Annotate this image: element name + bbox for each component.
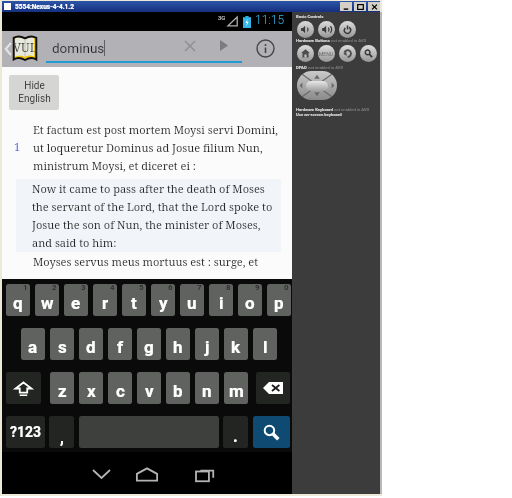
staticText: o (245, 293, 255, 313)
button[interactable]: c (108, 372, 132, 404)
staticText: not enabled in AVD (331, 38, 367, 43)
button[interactable]: Close (368, 2, 380, 11)
button[interactable]: Search (253, 416, 290, 448)
other: Up (5, 43, 12, 55)
staticText: d (86, 337, 96, 357)
staticText: f (117, 337, 124, 357)
staticText: x (87, 381, 96, 401)
button[interactable]: m (224, 372, 248, 404)
staticText: k (231, 337, 241, 357)
button[interactable]: w (35, 284, 59, 316)
staticText: 5554:Nexus-4-4.1.2 (15, 3, 74, 11)
button[interactable]: s (50, 328, 74, 360)
staticText: not enabled in AVD (308, 65, 344, 70)
staticText: Hide English (18, 80, 51, 105)
staticText: y (159, 293, 168, 313)
staticText: 4 (110, 284, 115, 292)
button[interactable]: y (151, 284, 175, 316)
button[interactable]: p (267, 284, 291, 316)
button[interactable]: App icon (13, 36, 37, 60)
staticText: 1 (23, 284, 28, 292)
button[interactable]: Shift (6, 372, 41, 404)
button[interactable]: Home (135, 462, 159, 486)
button[interactable]: n (195, 372, 219, 404)
button[interactable]: e (64, 284, 88, 316)
other: Go (220, 40, 228, 51)
staticText: MENU (319, 51, 334, 57)
button[interactable]: Hide English (9, 75, 59, 110)
staticText: j (205, 337, 210, 357)
staticText: m (229, 381, 244, 401)
button[interactable]: Menu (318, 45, 335, 62)
button[interactable]: Search (360, 45, 377, 62)
staticText: t (131, 293, 137, 313)
button[interactable]: q (6, 284, 30, 316)
button[interactable]: Power (339, 21, 356, 38)
staticText: VUL (13, 39, 37, 55)
button[interactable]: a (21, 328, 45, 360)
staticText: . (233, 427, 238, 446)
staticText: q (13, 293, 23, 313)
staticText: u (187, 293, 197, 313)
staticText: dominus (52, 40, 105, 56)
staticText: b (173, 381, 183, 401)
button[interactable]: d (79, 328, 103, 360)
button[interactable]: Minimize (340, 2, 352, 11)
button[interactable]: r (93, 284, 117, 316)
button[interactable]: Back (339, 45, 356, 62)
button[interactable]: Info (256, 39, 275, 58)
button[interactable]: t (122, 284, 146, 316)
staticText: i (219, 293, 224, 313)
staticText: p (274, 293, 284, 313)
staticText: h (173, 337, 183, 357)
staticText: n (202, 381, 212, 401)
button[interactable]: Back (89, 462, 113, 486)
button[interactable]: DPAD (297, 71, 337, 100)
staticText: 2 (52, 284, 57, 292)
staticText: e (71, 293, 81, 313)
button[interactable]: x (79, 372, 103, 404)
staticText: s (58, 337, 67, 357)
button[interactable]: Volume down (297, 21, 314, 38)
button[interactable]: u (180, 284, 204, 316)
staticText: z (58, 381, 67, 401)
button[interactable]: l (253, 328, 277, 360)
staticText: Hardware Buttons (296, 38, 331, 43)
staticText: Et factum est post mortem Moysi servi Do… (33, 122, 282, 173)
staticText: a (28, 337, 38, 357)
button[interactable]: , (49, 416, 74, 448)
staticText: 8 (226, 284, 231, 292)
button[interactable]: f (108, 328, 132, 360)
staticText: l (263, 337, 268, 357)
staticText: 7 (197, 284, 202, 292)
staticText: Basic Controls (296, 14, 324, 19)
button[interactable]: z (50, 372, 74, 404)
staticText: v (145, 381, 154, 401)
button[interactable]: h (166, 328, 190, 360)
button[interactable]: i (209, 284, 233, 316)
button[interactable]: ?123 (6, 416, 45, 448)
other: Clear (185, 41, 195, 51)
button[interactable]: v (137, 372, 161, 404)
staticText: 9 (255, 284, 260, 292)
staticText: not enabled in AVD (334, 107, 370, 112)
staticText: 3 (81, 284, 86, 292)
button[interactable]: Home (297, 45, 314, 62)
button[interactable]: b (166, 372, 190, 404)
staticText: g (144, 337, 154, 357)
button[interactable]: Recents (192, 462, 216, 486)
button[interactable]: Backspace (256, 372, 290, 404)
staticText: Hardware Keyboard (296, 107, 334, 112)
staticText: 1 (14, 139, 21, 154)
staticText: 5 (139, 284, 144, 292)
staticText: Moyses servus meus mortuus est : surge, … (33, 254, 259, 269)
button[interactable]: k (224, 328, 248, 360)
button[interactable]: j (195, 328, 219, 360)
button[interactable]: o (238, 284, 262, 316)
button[interactable]: g (137, 328, 161, 360)
button[interactable]: Volume up (318, 21, 335, 38)
button[interactable]: . (223, 416, 248, 448)
staticText: Now it came to pass after the death of M… (32, 181, 278, 250)
button[interactable]: Maximize (354, 2, 366, 11)
